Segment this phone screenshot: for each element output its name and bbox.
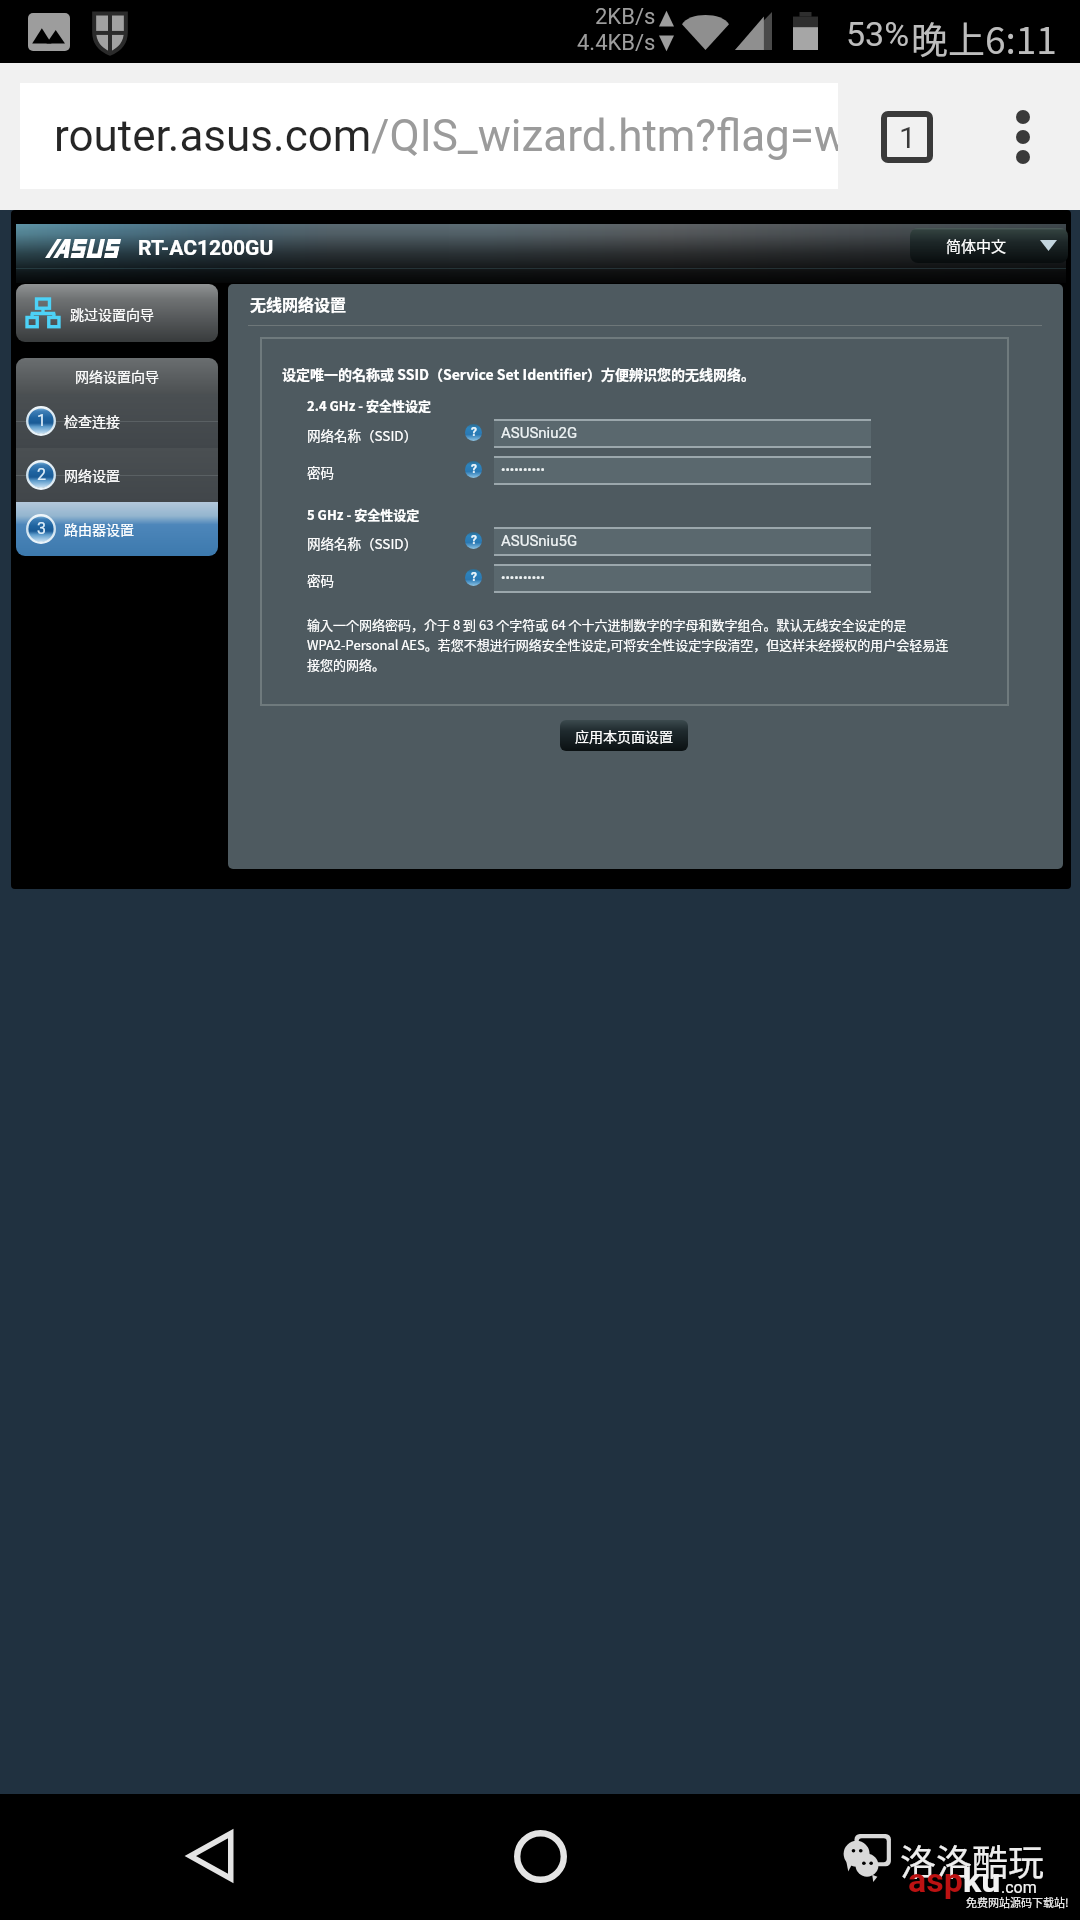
staticText: ASUSniu2G	[501, 424, 578, 442]
button[interactable]: 2	[16, 448, 218, 502]
staticText: 2	[37, 465, 46, 484]
staticText: ASUSniu5G	[501, 532, 578, 550]
staticText: ?	[471, 533, 477, 547]
button[interactable]: Help	[465, 569, 482, 586]
staticText: ?	[471, 462, 477, 476]
staticText: ?	[471, 570, 477, 584]
staticText: 网络设置	[64, 465, 120, 485]
staticText: 2.4 GHz - 安全性设定	[307, 396, 432, 415]
staticText: 2KB/s	[595, 4, 656, 30]
staticText: 1	[37, 411, 46, 430]
staticText: 网络名称（SSID）	[307, 533, 418, 553]
staticText: 53%	[846, 14, 910, 54]
staticText: 输入一个网络密码，介于 8 到 63 个字符或 64 个十六进制数字的字母和数字…	[307, 615, 949, 674]
staticText: 网络名称（SSID）	[307, 425, 418, 445]
staticText: ?	[471, 425, 477, 439]
button[interactable]: router.asus.com/QIS_wizard.htm?flag=w	[20, 83, 838, 189]
staticText: ku	[963, 1860, 1001, 1900]
button[interactable]: 跳过设置向导	[16, 284, 218, 342]
staticText: router.asus.com/QIS_wizard.htm?flag=w	[54, 110, 838, 162]
button[interactable]: Back	[167, 1813, 253, 1899]
staticText: 1	[899, 120, 916, 155]
staticText: RT-AC1200GU	[138, 236, 274, 261]
staticText: 检查连接	[64, 411, 120, 431]
button[interactable]: Help	[465, 461, 482, 478]
button[interactable]: 简体中文	[910, 228, 1068, 263]
staticText: 无线网络设置	[250, 292, 347, 315]
staticText: 路由器设置	[64, 519, 134, 539]
staticText: 晚上6:11	[911, 11, 1057, 65]
staticText: 密码	[307, 462, 334, 482]
button[interactable]: Tabs	[848, 63, 966, 210]
staticText: 设定唯一的名称或 SSID（Service Set Identifier）方便辨…	[282, 364, 756, 384]
staticText: 应用本页面设置	[575, 726, 673, 746]
button[interactable]: 应用本页面设置	[560, 720, 688, 751]
staticText: 3	[37, 519, 46, 538]
button[interactable]: 1	[16, 394, 218, 448]
button[interactable]: Help	[465, 532, 482, 549]
staticText: 密码	[307, 570, 334, 590]
staticText: 4.4KB/s	[577, 30, 656, 56]
staticText: 跳过设置向导	[70, 304, 154, 324]
staticText: .com	[1001, 1878, 1037, 1897]
button[interactable]: 3	[16, 502, 218, 556]
button[interactable]: Help	[465, 424, 482, 441]
staticText: 简体中文	[946, 235, 1007, 257]
button[interactable]: More options	[966, 63, 1080, 210]
staticText: 免费网站源码下载站!	[966, 1894, 1069, 1910]
button[interactable]: Home	[497, 1813, 583, 1899]
staticText: ••••••••••	[501, 462, 545, 477]
staticText: ••••••••••	[501, 570, 545, 585]
staticText: 网络设置向导	[75, 366, 159, 386]
staticText: asp	[908, 1860, 963, 1900]
staticText: 洛洛酷玩	[900, 1834, 1045, 1886]
staticText: 5 GHz - 安全性设定	[307, 505, 420, 524]
